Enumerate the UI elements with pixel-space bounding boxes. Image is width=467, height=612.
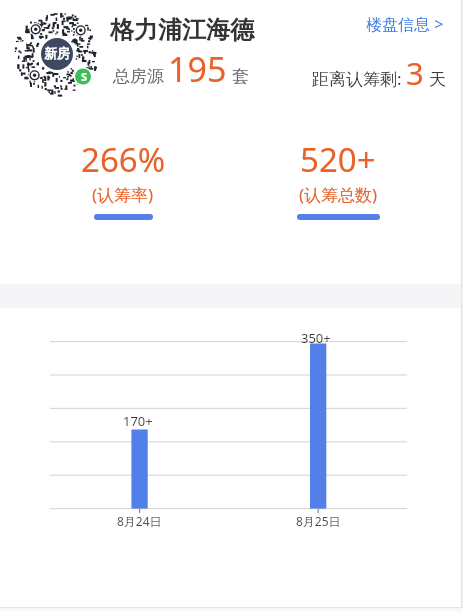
staticText: 170+ bbox=[123, 412, 153, 430]
button[interactable]: 520+ bbox=[258, 137, 418, 182]
staticText: 8月25日 bbox=[296, 513, 341, 529]
staticText: 格力浦江海德 bbox=[110, 15, 254, 45]
staticText: 套 bbox=[232, 66, 249, 87]
button[interactable]: 楼盘信息 > bbox=[366, 13, 444, 35]
staticText: 350+ bbox=[301, 329, 331, 347]
button[interactable]: 266% bbox=[43, 137, 203, 182]
staticText: 266% bbox=[81, 137, 166, 182]
staticText: 总房源 bbox=[113, 66, 164, 87]
staticText: 8月24日 bbox=[117, 513, 162, 529]
staticText: 楼盘信息 > bbox=[366, 13, 444, 35]
staticText: 新房 bbox=[44, 45, 70, 61]
staticText: (认筹总数) bbox=[299, 183, 378, 206]
staticText: 520+ bbox=[300, 137, 376, 182]
staticText: 195 bbox=[168, 46, 227, 92]
staticText: 天 bbox=[429, 69, 446, 90]
staticText: S bbox=[81, 69, 88, 84]
staticText: (认筹率) bbox=[92, 183, 154, 206]
button[interactable]: 新房 bbox=[13, 8, 103, 98]
staticText: 3 bbox=[406, 52, 424, 94]
staticText: 距离认筹剩: bbox=[312, 67, 402, 90]
